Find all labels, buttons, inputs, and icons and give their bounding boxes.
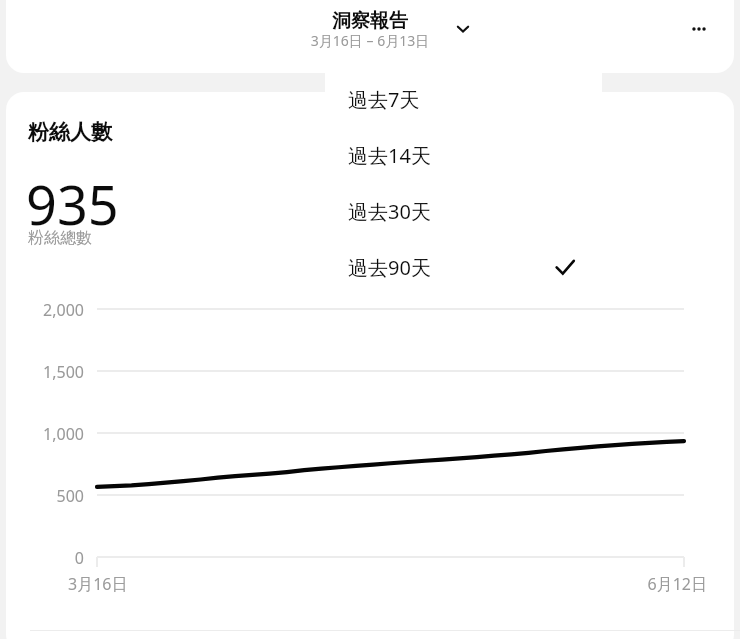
- staticText: 1,000: [24, 423, 84, 445]
- staticText: 935: [26, 167, 119, 241]
- staticText: 過去30天: [348, 198, 431, 225]
- staticText: 2,000: [24, 299, 84, 321]
- staticText: 1,500: [24, 361, 84, 383]
- button[interactable]: Change date range: [446, 12, 480, 46]
- staticText: 粉絲總數: [28, 228, 92, 248]
- staticText: 500: [24, 485, 84, 507]
- staticText: 過去7天: [348, 86, 420, 113]
- button[interactable]: 過去30天: [325, 186, 602, 236]
- staticText: 過去90天: [348, 254, 431, 281]
- button[interactable]: 過去7天: [325, 74, 602, 124]
- staticText: 粉絲人數: [28, 119, 112, 145]
- staticText: 洞察報告: [270, 9, 470, 33]
- staticText: 過去14天: [348, 142, 431, 169]
- button[interactable]: 過去90天: [325, 242, 602, 292]
- staticText: 3月16日 – 6月13日: [270, 31, 470, 50]
- staticText: 3月16日: [68, 573, 128, 595]
- button[interactable]: More options: [682, 12, 716, 46]
- staticText: 0: [24, 547, 84, 569]
- button[interactable]: 過去14天: [325, 130, 602, 180]
- staticText: 6月12日: [645, 573, 707, 595]
